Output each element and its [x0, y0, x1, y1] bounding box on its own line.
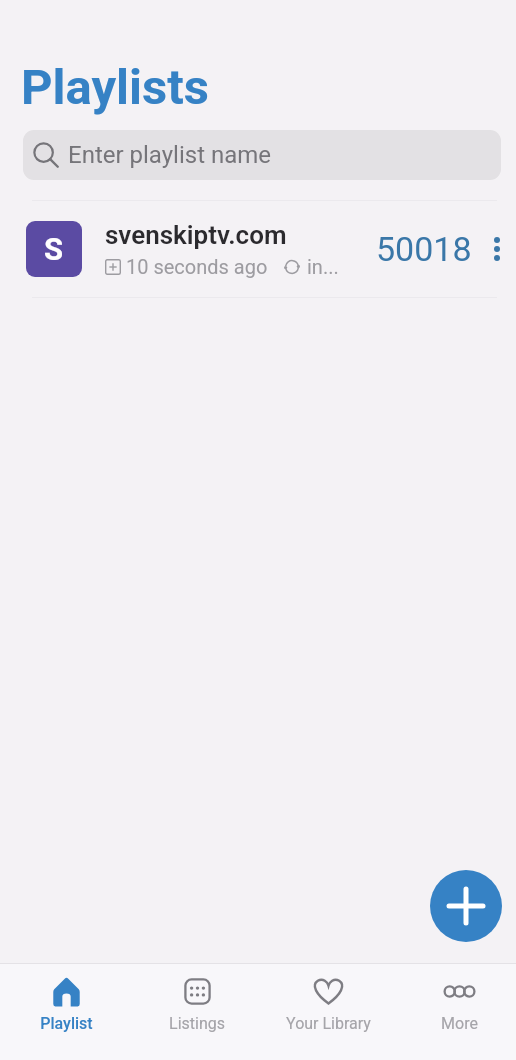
staticText: Playlist	[40, 1014, 93, 1033]
staticText: Listings	[169, 1014, 225, 1033]
button[interactable]: Your Library	[268, 964, 388, 1060]
button[interactable]: Listings	[137, 964, 257, 1060]
button[interactable]: More	[399, 964, 516, 1060]
staticText: svenskiptv.com	[105, 220, 287, 250]
button[interactable]: Playlist	[6, 964, 126, 1060]
staticText: Your Library	[286, 1014, 371, 1033]
button[interactable]: Add playlist	[430, 870, 502, 942]
staticText: S	[44, 231, 64, 267]
staticText: Enter playlist name	[68, 141, 272, 169]
button[interactable]: Enter playlist name	[23, 130, 501, 180]
staticText: More	[441, 1014, 478, 1033]
staticText: in...	[307, 255, 339, 278]
staticText: 50018	[376, 229, 472, 269]
staticText: Playlists	[21, 59, 209, 116]
button[interactable]: S	[0, 201, 516, 297]
button[interactable]: More options	[478, 219, 516, 279]
staticText: 10 seconds ago	[126, 255, 268, 278]
